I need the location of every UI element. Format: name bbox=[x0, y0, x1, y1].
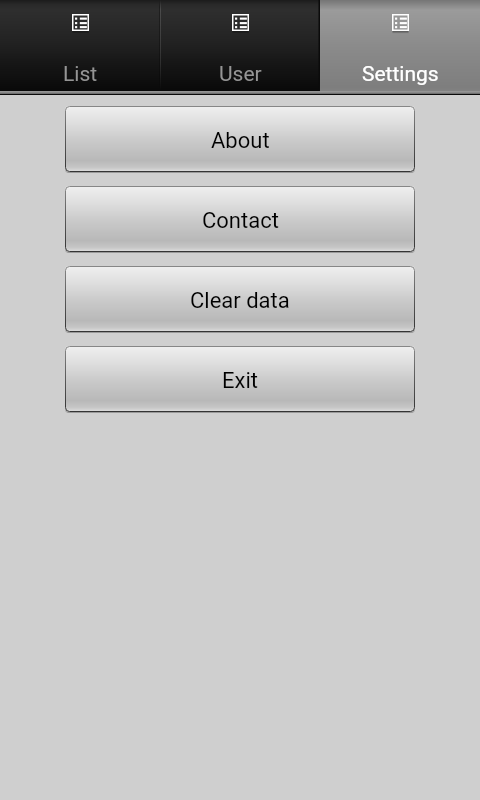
button[interactable]: Exit bbox=[65, 346, 415, 413]
button[interactable]: User bbox=[160, 0, 320, 91]
staticText: About bbox=[211, 128, 270, 154]
staticText: Clear data bbox=[190, 288, 290, 314]
staticText: Settings bbox=[362, 62, 439, 87]
staticText: User bbox=[219, 62, 262, 87]
staticText: Exit bbox=[222, 368, 258, 394]
button[interactable]: Clear data bbox=[65, 266, 415, 333]
button[interactable]: List bbox=[0, 0, 160, 91]
button[interactable]: Settings bbox=[320, 0, 480, 91]
button[interactable]: Contact bbox=[65, 186, 415, 253]
button[interactable]: About bbox=[65, 106, 415, 173]
staticText: Contact bbox=[202, 208, 279, 234]
staticText: List bbox=[63, 62, 98, 87]
